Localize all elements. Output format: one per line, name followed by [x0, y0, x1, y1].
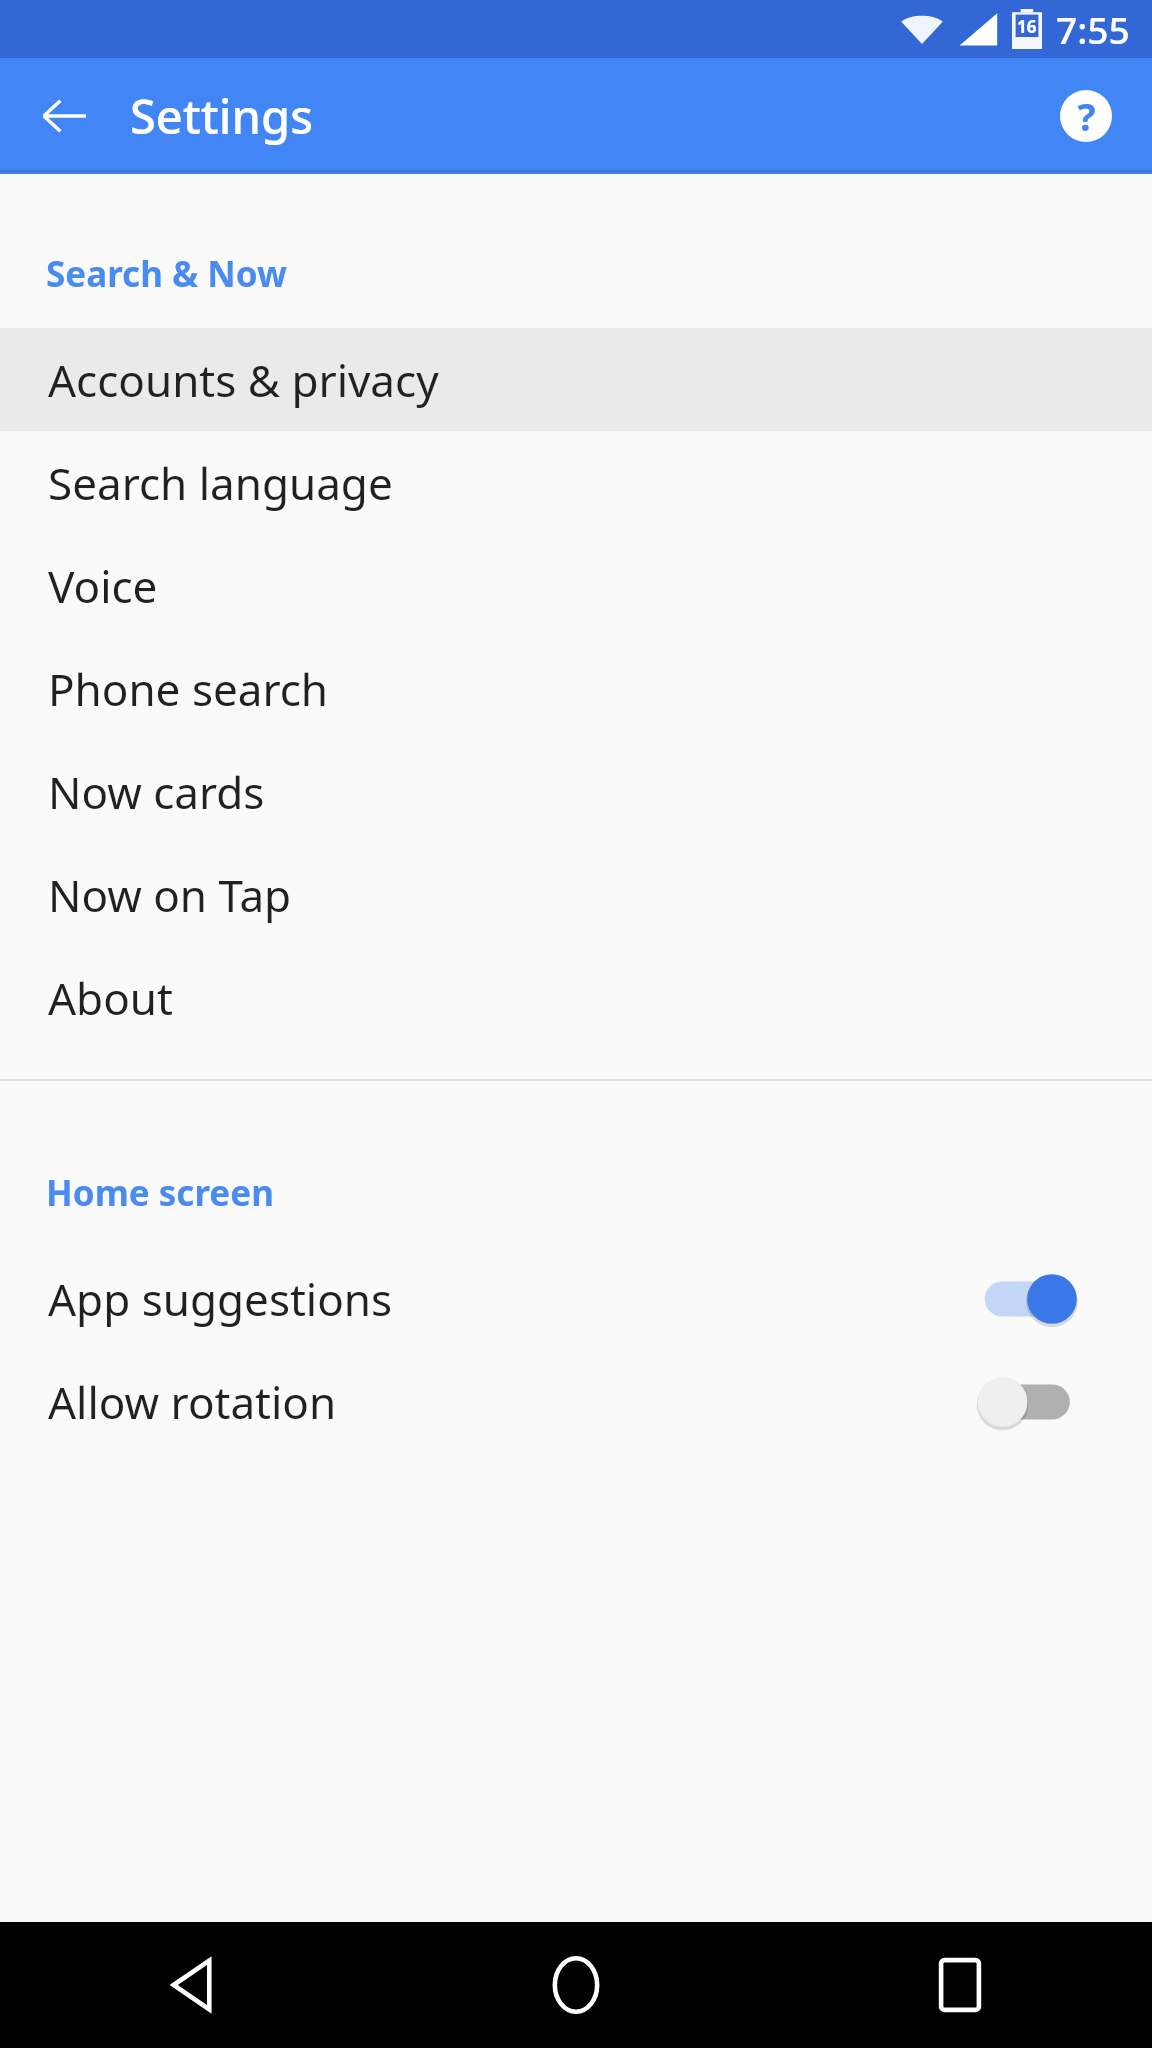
- button[interactable]: Recent apps: [768, 1922, 1152, 2048]
- staticText: Now on Tap: [48, 865, 292, 925]
- staticText: Allow rotation: [48, 1372, 337, 1432]
- button[interactable]: Allow rotation: [0, 1350, 1152, 1453]
- button[interactable]: Accounts & privacy: [0, 328, 1152, 431]
- button[interactable]: App suggestions: [0, 1247, 1152, 1350]
- staticText: Phone search: [48, 659, 329, 719]
- staticText: Voice: [48, 556, 158, 616]
- staticText: 7:55: [1056, 4, 1130, 54]
- staticText: App suggestions: [48, 1269, 393, 1329]
- button[interactable]: Now on Tap: [0, 843, 1152, 946]
- button[interactable]: Home: [384, 1922, 768, 2048]
- button[interactable]: Help: [1044, 74, 1128, 158]
- staticText: Now cards: [48, 762, 265, 822]
- button[interactable]: Back: [0, 1922, 384, 2048]
- staticText: About: [48, 968, 173, 1028]
- button[interactable]: Search language: [0, 431, 1152, 534]
- button[interactable]: Back: [22, 74, 106, 158]
- button[interactable]: About: [0, 946, 1152, 1049]
- staticText: Home screen: [46, 1169, 274, 1217]
- staticText: Search & Now: [46, 250, 287, 298]
- button[interactable]: Now cards: [0, 740, 1152, 843]
- staticText: Search language: [48, 453, 393, 513]
- staticText: 16: [1017, 15, 1037, 38]
- staticText: Accounts & privacy: [48, 350, 439, 410]
- button[interactable]: Voice: [0, 534, 1152, 637]
- staticText: Settings: [130, 84, 313, 148]
- staticText: ?: [1077, 90, 1096, 142]
- button[interactable]: Phone search: [0, 637, 1152, 740]
